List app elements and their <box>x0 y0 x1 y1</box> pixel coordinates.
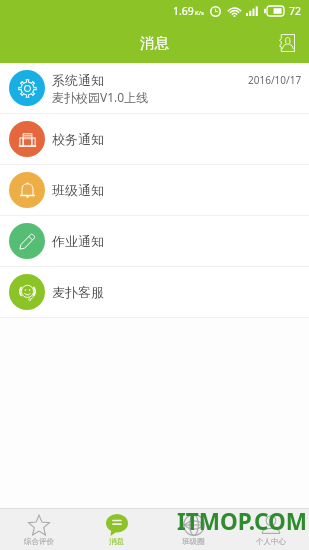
staticText: 综合评价 <box>24 537 54 546</box>
button[interactable]: 系统通知 <box>0 63 309 113</box>
staticText: 1.69 <box>173 4 194 18</box>
staticText: 班级通知 <box>52 182 104 198</box>
staticText: 个人中心 <box>256 537 286 546</box>
staticText: 消息 <box>140 34 169 52</box>
staticText: 班级圈 <box>182 537 205 546</box>
button[interactable]: 作业通知 <box>0 216 309 266</box>
button[interactable]: 个人中心 <box>232 509 309 550</box>
button[interactable]: 消息 <box>78 509 155 550</box>
staticText: 72 <box>289 4 302 18</box>
staticText: 校务通知 <box>52 131 104 147</box>
button[interactable]: 校务通知 <box>0 114 309 164</box>
staticText: K/s <box>195 9 204 17</box>
button[interactable]: 麦扑客服 <box>0 267 309 317</box>
staticText: 作业通知 <box>52 233 104 249</box>
staticText: 系统通知 <box>52 72 104 88</box>
button[interactable]: 综合评价 <box>0 509 78 550</box>
staticText: 消息 <box>109 537 124 546</box>
staticText: ITMOP.COM <box>177 506 308 537</box>
button[interactable]: 班级通知 <box>0 165 309 215</box>
button[interactable]: Contacts <box>271 27 303 59</box>
staticText: 2016/10/17 <box>248 73 302 87</box>
staticText: 麦扑客服 <box>52 284 104 300</box>
button[interactable]: 班级圈 <box>155 509 232 550</box>
staticText: 麦扑校园V1.0上线 <box>52 89 149 105</box>
